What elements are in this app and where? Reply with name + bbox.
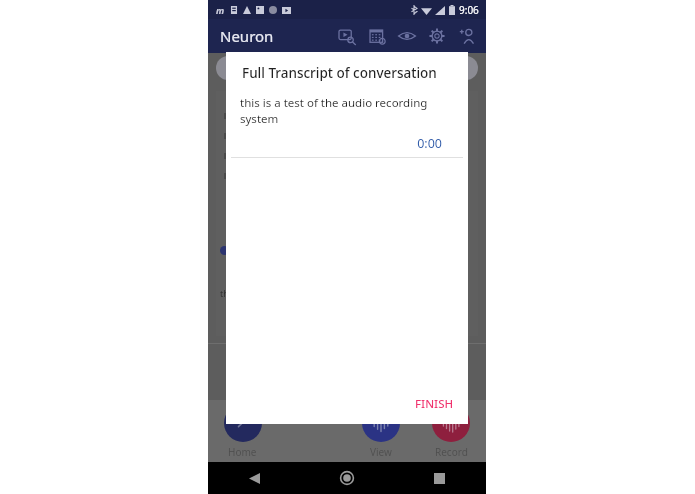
button[interactable]: View (394, 23, 420, 49)
button[interactable]: Video search (334, 23, 360, 49)
staticText: FINISH (415, 396, 454, 412)
staticText: m (216, 4, 225, 16)
staticText: Record (435, 445, 468, 459)
staticText: Neuron (220, 26, 274, 46)
button[interactable]: Home (208, 400, 277, 462)
button[interactable]: Back (208, 462, 300, 494)
staticText: th (220, 287, 229, 299)
button[interactable]: Record (416, 400, 486, 462)
button[interactable]: Settings (424, 23, 450, 49)
staticText: Full Transcript of conversation (242, 64, 437, 82)
staticText: Home (228, 445, 257, 459)
staticText: 0:00 (226, 135, 442, 152)
button[interactable]: Home (300, 462, 393, 494)
button[interactable]: Recent apps (393, 462, 486, 494)
staticText: this is a test of the audio recording sy… (240, 95, 460, 127)
staticText: 9:06 (459, 3, 479, 17)
button[interactable]: Add person (454, 23, 480, 49)
button[interactable]: View (346, 400, 416, 462)
staticText: View (370, 445, 392, 459)
button[interactable]: FINISH (401, 388, 468, 420)
button[interactable]: Calendar (364, 23, 390, 49)
